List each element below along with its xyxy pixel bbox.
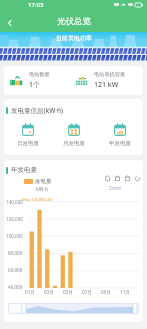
staticText: 1个 bbox=[29, 80, 41, 90]
staticText: 光伏总览 bbox=[57, 16, 91, 27]
staticText: kW·h bbox=[36, 186, 48, 193]
staticText: 120,000 bbox=[6, 216, 23, 222]
staticText: 140,000 bbox=[6, 199, 23, 205]
button[interactable]: Refresh bbox=[134, 175, 141, 182]
button[interactable]: 年发电量 bbox=[97, 123, 143, 147]
staticText: 100,000 bbox=[6, 233, 23, 239]
staticText: 电站装机容量 bbox=[94, 71, 126, 78]
staticText: 年发电量 bbox=[11, 166, 37, 174]
staticText: 发电量信息(kW·h) bbox=[11, 106, 64, 115]
button[interactable]: Save as image bbox=[104, 175, 111, 182]
staticText: 发电量 bbox=[35, 178, 52, 185]
button[interactable]: Back bbox=[0, 13, 20, 32]
staticText: 05月 bbox=[63, 289, 73, 295]
staticText: 40,000 bbox=[8, 284, 23, 290]
staticText: 年发电量 bbox=[109, 140, 131, 147]
button[interactable]: Restore zoom bbox=[124, 175, 131, 182]
staticText: Zoom bbox=[109, 185, 122, 191]
button[interactable]: Data zoom slider bbox=[8, 303, 139, 314]
button[interactable]: 电站数量 bbox=[9, 66, 73, 95]
staticText: 当前发电功率 bbox=[56, 34, 92, 42]
staticText: Max:130490.33 bbox=[22, 197, 52, 203]
staticText: 60,000 bbox=[8, 267, 23, 273]
staticText: 11月 bbox=[120, 289, 130, 295]
button[interactable]: Data zoom bbox=[114, 175, 121, 182]
button[interactable]: 月发电量 bbox=[51, 123, 97, 147]
staticText: 03月 bbox=[44, 289, 54, 295]
staticText: 07月 bbox=[82, 289, 92, 295]
button[interactable]: 日发电量 bbox=[4, 123, 51, 147]
staticText: 17:03 bbox=[28, 1, 44, 9]
staticText: 121 kW bbox=[94, 80, 119, 90]
staticText: 80,000 bbox=[8, 250, 23, 256]
staticText: 月发电量 bbox=[63, 140, 85, 147]
staticText: 01月 bbox=[25, 289, 35, 295]
staticText: 日发电量 bbox=[17, 140, 39, 147]
staticText: 09月 bbox=[101, 289, 111, 295]
button[interactable]: 电站装机容量 bbox=[74, 66, 143, 95]
staticText: 电站数量 bbox=[29, 71, 50, 78]
